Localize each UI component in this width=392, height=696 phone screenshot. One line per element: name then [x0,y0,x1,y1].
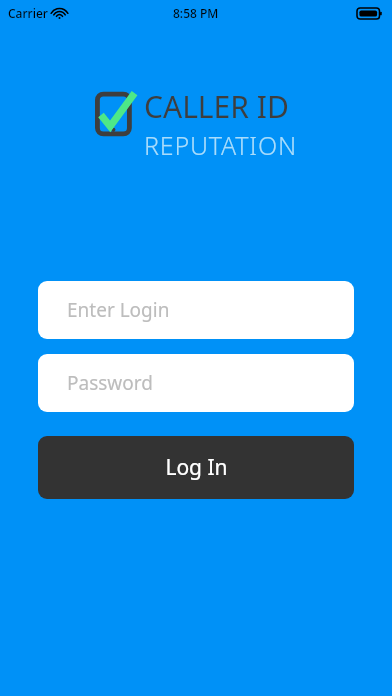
staticText: CALLER ID [144,86,289,127]
staticText: 8:58 PM [173,5,219,21]
button[interactable]: Password [38,354,354,412]
staticText: Carrier [8,5,48,21]
staticText: Enter Login [67,297,170,323]
staticText: Password [67,370,153,396]
staticText: REPUTATION [144,128,297,162]
staticText: Log In [165,453,228,482]
button[interactable]: Log In [38,436,354,499]
button[interactable]: Enter Login [38,281,354,339]
